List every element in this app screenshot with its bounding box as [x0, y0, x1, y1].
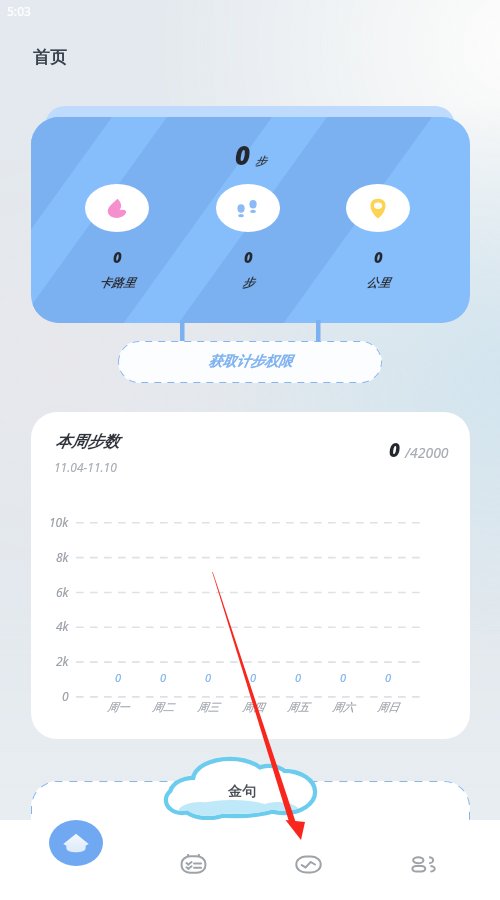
staticText: 获取计步权限: [208, 353, 292, 371]
staticText: 6k: [56, 584, 69, 600]
staticText: 公里: [366, 275, 390, 290]
staticText: 8k: [56, 549, 69, 565]
staticText: 周六: [332, 700, 354, 714]
staticText: 0: [113, 247, 122, 267]
staticText: 0: [205, 670, 212, 685]
staticText: 金句: [228, 783, 256, 801]
staticText: 2k: [56, 653, 69, 669]
staticText: 0: [385, 670, 392, 685]
staticText: 周二: [152, 700, 174, 714]
staticText: 卡路里: [99, 275, 135, 290]
staticText: 本周步数: [55, 432, 119, 452]
staticText: 0: [250, 670, 257, 685]
staticText: 0: [340, 670, 347, 685]
staticText: 首页: [33, 47, 67, 68]
staticText: 周四: [242, 700, 264, 714]
button[interactable]: 0: [31, 117, 470, 323]
staticText: 0: [160, 670, 167, 685]
staticText: 0: [295, 670, 302, 685]
staticText: 周一: [107, 700, 129, 714]
button[interactable]: Tasks: [169, 839, 217, 887]
staticText: 0: [374, 247, 383, 267]
staticText: 0: [115, 670, 122, 685]
staticText: 0: [235, 137, 251, 172]
button[interactable]: Home: [49, 820, 103, 866]
button[interactable]: Friends: [400, 840, 448, 888]
staticText: 4k: [56, 618, 69, 634]
button[interactable]: Activity: [284, 840, 332, 888]
staticText: 步: [242, 275, 254, 290]
staticText: 周日: [377, 700, 399, 714]
staticText: 0: [389, 437, 401, 463]
staticText: 周五: [287, 700, 309, 714]
staticText: 10k: [49, 514, 69, 530]
staticText: 0: [244, 247, 253, 267]
button[interactable]: 获取计步权限: [118, 341, 382, 383]
staticText: 5:03: [7, 3, 31, 19]
staticText: 0: [62, 688, 69, 704]
staticText: 11.04-11.10: [54, 459, 117, 475]
staticText: 步: [255, 154, 266, 168]
staticText: 周三: [197, 700, 219, 714]
staticText: /42000: [405, 443, 449, 462]
